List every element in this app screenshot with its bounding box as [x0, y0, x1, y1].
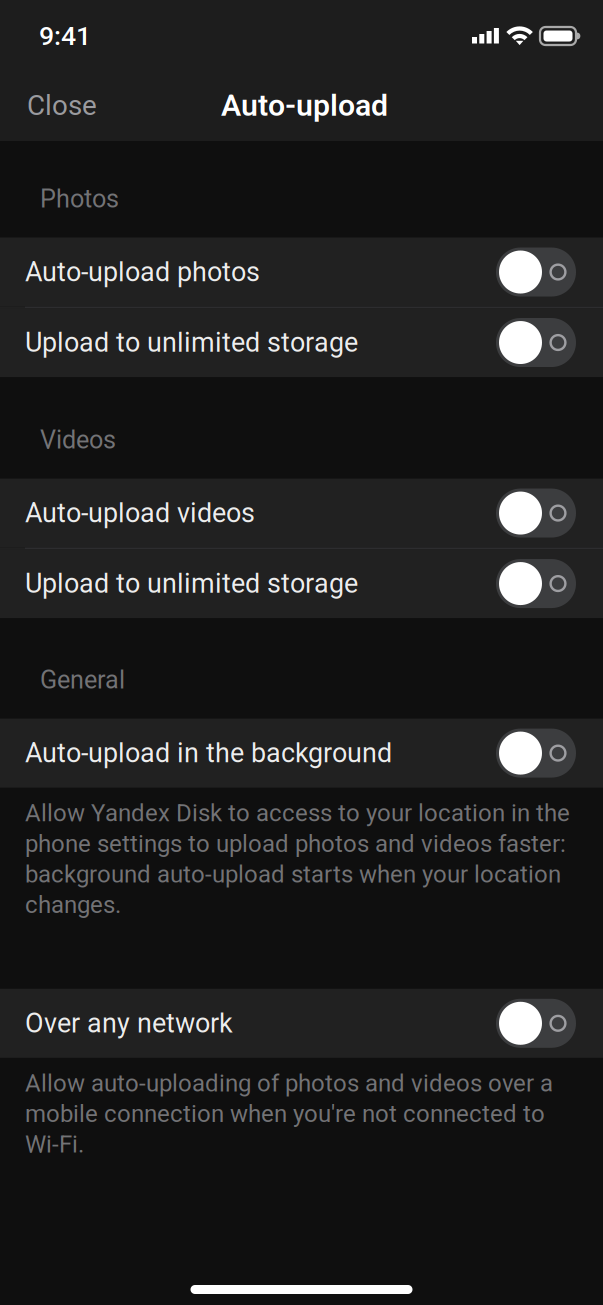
staticText: 9:41 — [39, 20, 91, 52]
button[interactable]: Over any network — [0, 989, 603, 1058]
staticText: Allow auto-uploading of photos and video… — [25, 1069, 553, 1158]
staticText: Over any network — [25, 1007, 233, 1039]
staticText: Videos — [40, 425, 116, 454]
staticText: General — [40, 665, 125, 695]
staticText: Auto-upload photos — [25, 256, 260, 288]
staticText: Auto-upload videos — [25, 497, 255, 529]
staticText: Auto-upload — [221, 88, 388, 123]
staticText: Auto-upload in the background — [25, 737, 392, 769]
button[interactable]: Upload to unlimited storage — [0, 308, 603, 377]
button[interactable]: Auto-upload photos — [0, 237, 603, 306]
button[interactable]: Upload to unlimited storage — [0, 549, 603, 618]
staticText: Upload to unlimited storage — [25, 568, 358, 599]
staticText: Allow Yandex Disk to access to your loca… — [25, 799, 570, 919]
button[interactable]: Close — [0, 70, 117, 141]
staticText: Upload to unlimited storage — [25, 327, 358, 358]
staticText: Close — [27, 89, 97, 122]
button[interactable]: Auto-upload videos — [0, 479, 603, 548]
staticText: Photos — [40, 184, 119, 213]
button[interactable]: Auto-upload in the background — [0, 719, 603, 788]
